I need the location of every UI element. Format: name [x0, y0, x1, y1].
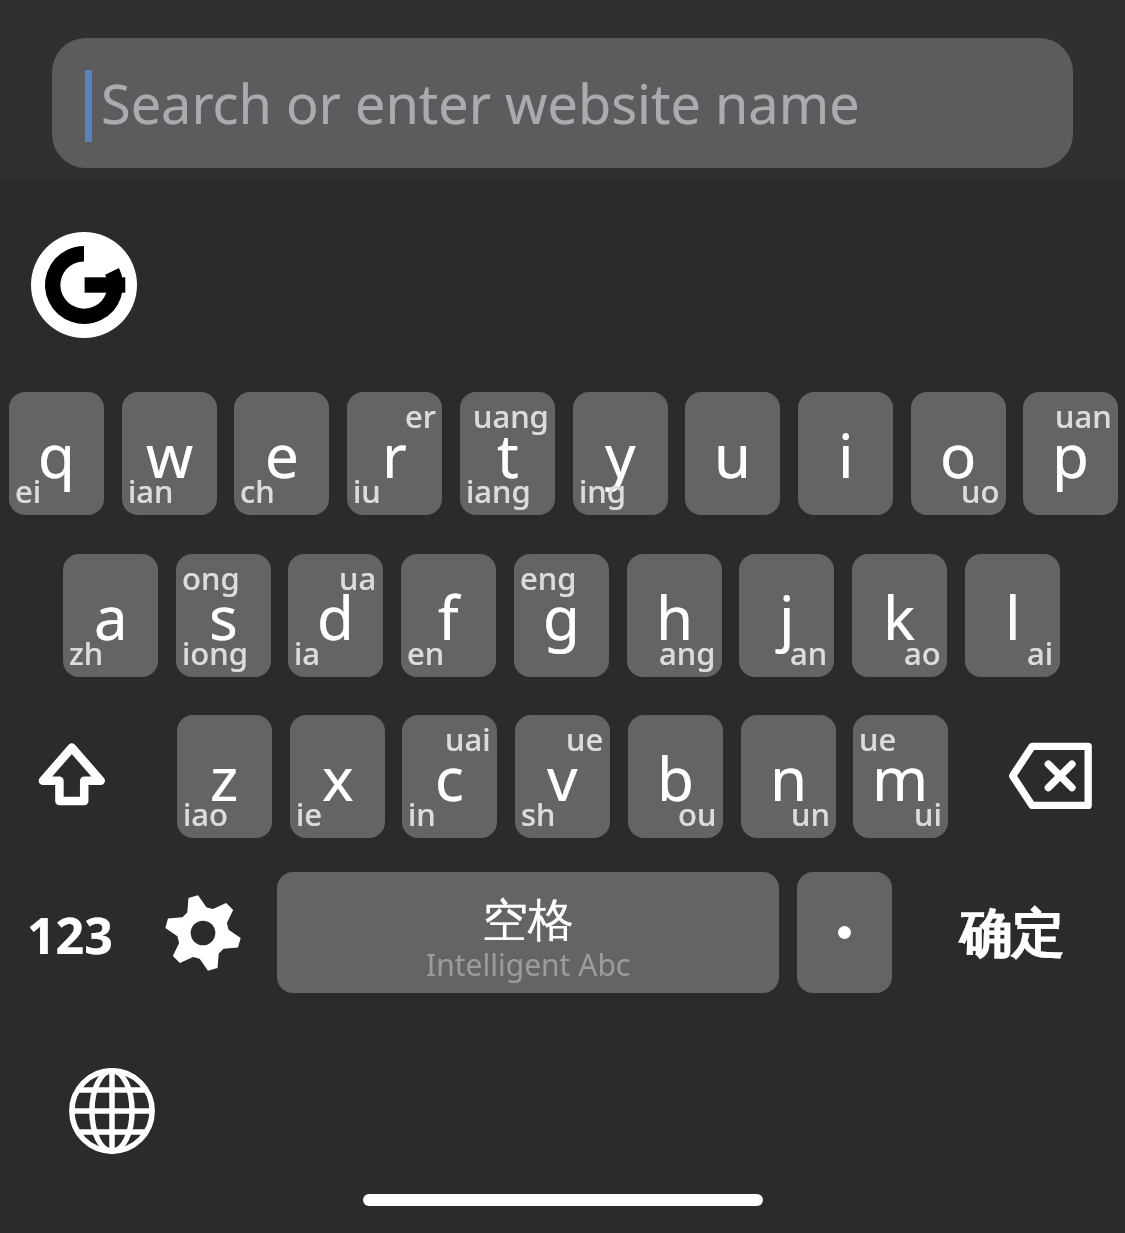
button[interactable]: j	[739, 554, 834, 677]
button[interactable]: Google	[31, 232, 137, 338]
staticText: a	[94, 576, 128, 658]
button[interactable]: g	[514, 554, 609, 677]
staticText: t	[497, 414, 519, 496]
button[interactable]: n	[741, 715, 836, 838]
button[interactable]: a	[63, 554, 158, 677]
button[interactable]: 空格	[277, 872, 779, 993]
staticText: ue	[566, 718, 604, 760]
button[interactable]: y	[573, 392, 668, 515]
staticText: y	[605, 414, 636, 496]
button[interactable]: Settings	[148, 878, 258, 988]
staticText: uai	[445, 718, 491, 760]
staticText: en	[407, 632, 445, 674]
button[interactable]: z	[177, 715, 272, 838]
staticText: ie	[296, 793, 323, 835]
button[interactable]: o	[911, 392, 1006, 515]
staticText: ue	[859, 718, 897, 760]
button[interactable]: q	[9, 392, 104, 515]
staticText: v	[547, 737, 578, 819]
staticText: eng	[520, 557, 577, 599]
staticText: 123	[27, 901, 113, 969]
button[interactable]: v	[515, 715, 610, 838]
staticText: an	[790, 632, 828, 674]
button[interactable]: c	[402, 715, 497, 838]
button[interactable]: k	[852, 554, 947, 677]
staticText: i	[838, 414, 854, 496]
button[interactable]: d	[288, 554, 383, 677]
staticText: zh	[69, 632, 104, 674]
staticText: ao	[904, 632, 941, 674]
button[interactable]: u	[685, 392, 780, 515]
staticText: ong	[182, 557, 240, 599]
staticText: ia	[294, 632, 321, 674]
staticText: uo	[961, 470, 1000, 512]
staticText: x	[322, 737, 354, 819]
staticText: b	[657, 737, 694, 819]
staticText: uang	[473, 395, 549, 437]
staticText: iu	[353, 470, 381, 512]
staticText: h	[656, 576, 694, 658]
staticText: q	[38, 414, 75, 496]
button[interactable]: 123	[10, 880, 130, 990]
button[interactable]: p	[1023, 392, 1118, 515]
button[interactable]: b	[628, 715, 723, 838]
staticText: un	[791, 793, 830, 835]
staticText: iao	[183, 793, 229, 835]
staticText: ou	[678, 793, 717, 835]
staticText: iang	[466, 470, 531, 512]
button[interactable]: Backspace	[992, 715, 1110, 838]
staticText: er	[405, 395, 436, 437]
staticText: 空格	[482, 892, 574, 950]
button[interactable]: r	[347, 392, 442, 515]
staticText: ang	[659, 632, 716, 674]
button[interactable]: e	[234, 392, 329, 515]
staticText: r	[382, 414, 407, 496]
staticText: in	[408, 793, 436, 835]
staticText: p	[1052, 414, 1089, 496]
button[interactable]: f	[401, 554, 496, 677]
button[interactable]: s	[176, 554, 271, 677]
staticText: o	[940, 414, 977, 496]
staticText: s	[209, 576, 238, 658]
button[interactable]: h	[627, 554, 722, 677]
button[interactable]: i	[798, 392, 893, 515]
button[interactable]: Shift	[14, 715, 132, 838]
staticText: iong	[182, 632, 248, 674]
button[interactable]: 确定	[938, 880, 1083, 990]
staticText: uan	[1055, 395, 1112, 437]
staticText: n	[770, 737, 808, 819]
button[interactable]: x	[290, 715, 385, 838]
button[interactable]: t	[460, 392, 555, 515]
staticText: d	[317, 576, 354, 658]
button[interactable]: l	[965, 554, 1060, 677]
staticText: z	[210, 737, 239, 819]
button[interactable]: w	[122, 392, 217, 515]
staticText: sh	[521, 793, 556, 835]
staticText: ua	[339, 557, 377, 599]
staticText: l	[1005, 576, 1021, 658]
button[interactable]: m	[853, 715, 948, 838]
button[interactable]: Period	[797, 872, 892, 993]
staticText: w	[146, 414, 194, 496]
staticText: ei	[15, 470, 42, 512]
button[interactable]	[52, 38, 1073, 168]
staticText: g	[543, 576, 580, 658]
staticText: m	[872, 737, 929, 819]
staticText: ing	[579, 470, 627, 512]
staticText: Search or enter website name	[101, 66, 860, 140]
staticText: ai	[1027, 632, 1054, 674]
staticText: ian	[128, 470, 174, 512]
staticText: ch	[240, 470, 275, 512]
staticText: u	[714, 414, 752, 496]
staticText: ui	[914, 793, 942, 835]
staticText: k	[883, 576, 916, 658]
staticText: Intelligent Abc	[426, 944, 631, 985]
staticText: j	[779, 576, 795, 658]
button[interactable]: Switch keyboard language	[57, 1056, 167, 1166]
staticText: e	[265, 414, 299, 496]
staticText: f	[438, 576, 459, 658]
staticText: 确定	[959, 902, 1063, 968]
staticText: c	[435, 737, 464, 819]
